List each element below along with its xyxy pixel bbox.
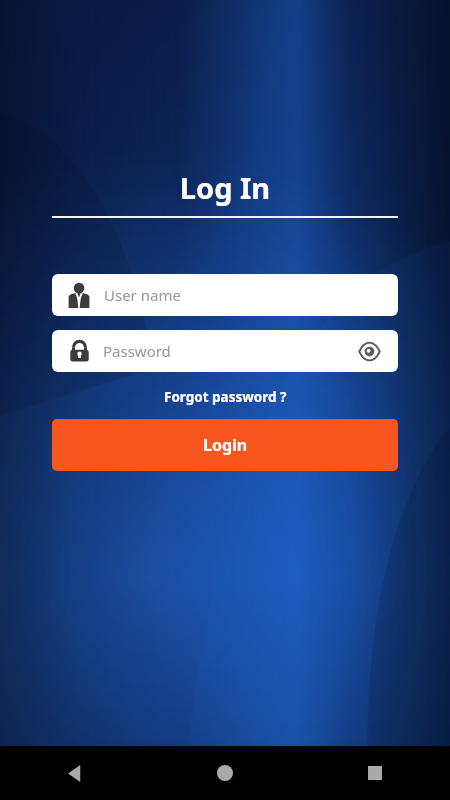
button[interactable]: Login <box>52 419 398 471</box>
staticText: Password <box>103 341 354 361</box>
staticText: Log In <box>0 168 450 207</box>
staticText: Login <box>203 434 248 456</box>
staticText: User name <box>104 285 181 305</box>
button[interactable]: User name <box>52 274 398 316</box>
staticText: Forgot password ? <box>164 388 287 406</box>
button[interactable]: Forgot password ? <box>158 386 293 408</box>
button[interactable]: Back <box>0 746 150 800</box>
button[interactable]: Password <box>52 330 398 372</box>
button[interactable]: Show password <box>354 336 384 366</box>
button[interactable]: Home <box>150 746 300 800</box>
button[interactable]: Recent apps <box>300 746 450 800</box>
